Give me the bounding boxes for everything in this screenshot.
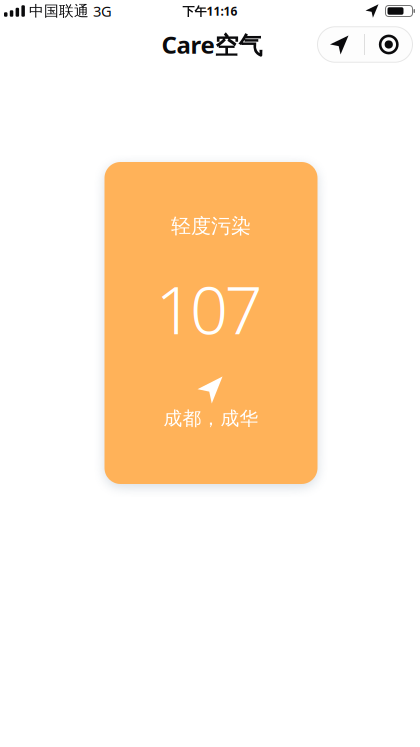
staticText: 中国联通 — [29, 2, 89, 20]
staticText: 3G — [93, 1, 112, 21]
staticText: Care空气 — [161, 28, 262, 60]
button[interactable]: Close — [365, 27, 412, 62]
staticText: 轻度污染 — [171, 214, 251, 238]
button[interactable]: 轻度污染 — [104, 162, 317, 484]
staticText: 107 — [155, 264, 262, 353]
button[interactable]: Locate — [317, 27, 364, 62]
staticText: 下午11:16 — [182, 3, 237, 19]
staticText: 成都，成华 — [163, 407, 258, 430]
